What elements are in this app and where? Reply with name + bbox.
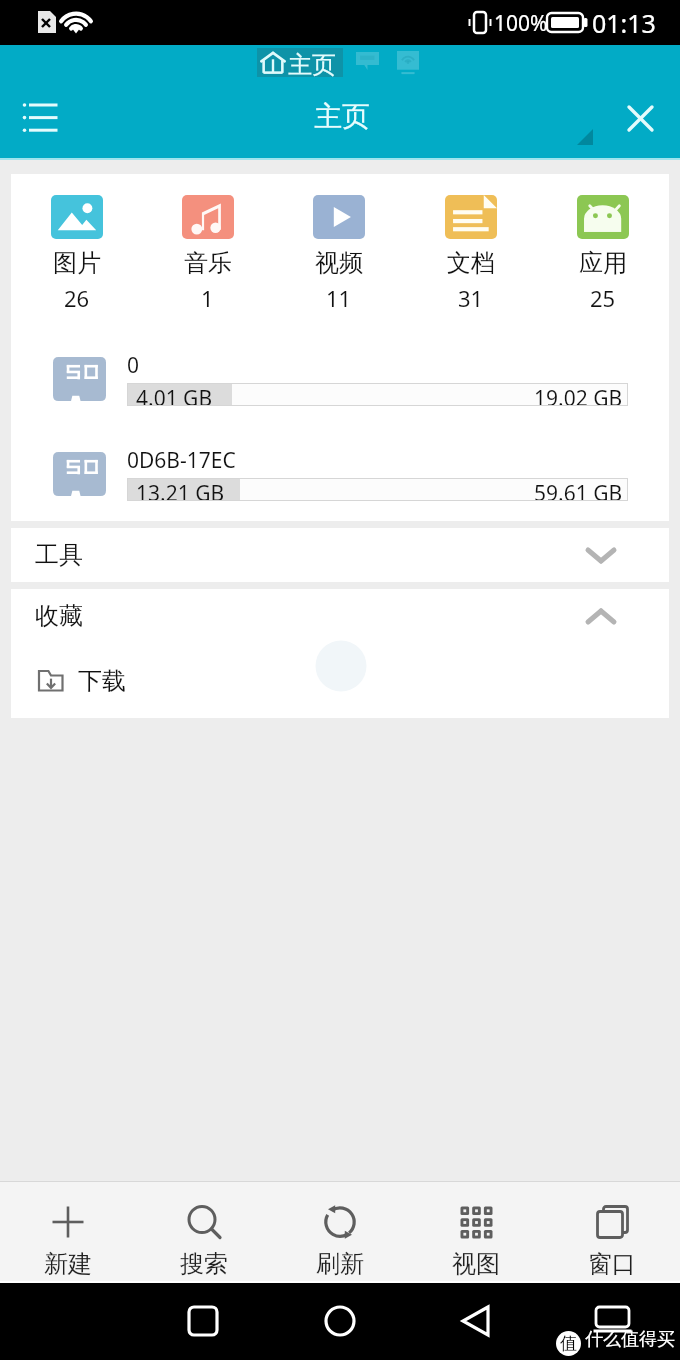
button[interactable]: 音乐 <box>142 195 273 313</box>
staticText: 26 <box>64 283 90 313</box>
staticText: 0 <box>127 351 140 380</box>
button[interactable]: 搜索 <box>136 1182 272 1281</box>
button[interactable]: 文档 <box>405 195 537 313</box>
staticText: 视频 <box>315 248 363 278</box>
button[interactable]: 0 <box>11 351 669 406</box>
staticText: 4.01 GB <box>136 384 213 405</box>
button[interactable]: 视频 <box>273 195 405 313</box>
button[interactable]: 图片 <box>11 195 142 313</box>
staticText: 19.02 GB <box>534 384 623 405</box>
staticText: 主页 <box>314 99 370 134</box>
staticText: 13.21 GB <box>136 479 225 500</box>
button[interactable]: 视图 <box>408 1182 544 1281</box>
staticText: 01:13 <box>592 6 656 40</box>
staticText: 应用 <box>579 248 627 278</box>
button[interactable]: Network <box>397 51 419 75</box>
button[interactable]: 收藏 <box>11 589 669 643</box>
staticText: 搜索 <box>180 1249 228 1279</box>
button[interactable]: SD card <box>356 52 379 70</box>
button[interactable]: 0D6B-17EC <box>11 446 669 501</box>
staticText: 主页 <box>288 50 336 79</box>
button[interactable]: 窗口 <box>544 1182 680 1281</box>
staticText: 文档 <box>447 248 495 278</box>
staticText: 图片 <box>53 248 101 278</box>
staticText: 收藏 <box>35 601 83 631</box>
button[interactable]: Home <box>324 1305 356 1337</box>
staticText: 100% <box>494 9 548 38</box>
button[interactable]: 新建 <box>0 1182 136 1281</box>
button[interactable]: Back <box>460 1305 492 1337</box>
staticText: 什么值得买 <box>585 1328 675 1351</box>
button[interactable]: Recents <box>187 1305 219 1337</box>
staticText: 视图 <box>452 1249 500 1279</box>
button[interactable]: Screenshot <box>592 1304 634 1336</box>
button[interactable]: 刷新 <box>272 1182 408 1281</box>
staticText: 11 <box>326 283 352 313</box>
staticText: 31 <box>458 283 484 313</box>
staticText: 25 <box>590 283 616 313</box>
button[interactable]: 下载 <box>11 643 669 718</box>
staticText: 刷新 <box>316 1249 364 1279</box>
staticText: 音乐 <box>184 248 232 278</box>
button[interactable]: Close <box>618 96 663 141</box>
staticText: 新建 <box>44 1249 92 1279</box>
staticText: 值 <box>560 1333 577 1354</box>
staticText: 下载 <box>78 666 126 696</box>
staticText: 窗口 <box>588 1249 636 1279</box>
button[interactable]: Menu <box>18 99 62 143</box>
staticText: 0D6B-17EC <box>127 446 236 475</box>
button[interactable]: 应用 <box>537 195 669 313</box>
staticText: 1 <box>201 283 214 313</box>
button[interactable]: 主页 <box>257 48 343 77</box>
staticText: 工具 <box>35 540 83 570</box>
staticText: 59.61 GB <box>534 479 623 500</box>
button[interactable]: 工具 <box>11 528 669 582</box>
